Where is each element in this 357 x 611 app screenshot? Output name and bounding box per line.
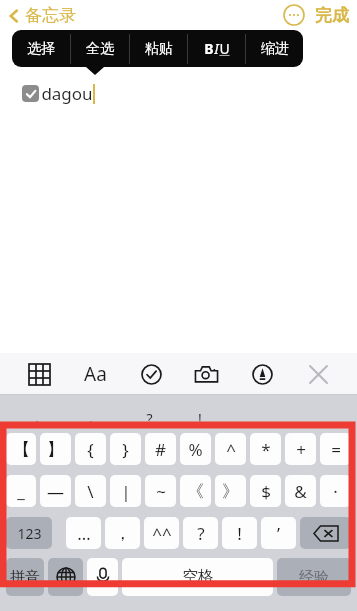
staticText: * [261,438,271,461]
staticText: 【 [13,439,30,460]
staticText: 。 [88,410,102,428]
staticText: $ [261,480,271,503]
button[interactable]: B [188,30,245,67]
staticText: 全选 [86,40,114,58]
button[interactable]: 选择 [12,30,70,67]
staticText: 空格 [182,567,214,587]
button[interactable]: · [320,475,351,507]
button[interactable]: Text format [78,357,112,391]
staticText: 缩进 [261,40,289,58]
button[interactable]: { [75,433,106,465]
staticText: …… [304,409,327,428]
button[interactable]: Voice input [87,558,118,596]
staticText: 、 [246,410,260,428]
staticText: ! [198,409,202,428]
button[interactable]: … [66,517,101,549]
staticText: 完成 [315,5,349,26]
staticText: = [331,438,341,461]
button[interactable]: 备忘录 [6,5,76,26]
staticText: — [47,480,64,503]
button[interactable]: # [145,433,176,465]
button[interactable]: % [180,433,211,465]
button[interactable]: ~ [145,475,176,507]
button[interactable]: 完成 [315,5,349,26]
button[interactable]: & [285,475,316,507]
staticText: _ [17,480,25,503]
button[interactable]: ? [146,409,153,428]
staticText: 备忘录 [25,5,76,26]
button[interactable]: 经验 [277,558,351,596]
button[interactable]: — [40,475,71,507]
button[interactable]: | [110,475,141,507]
staticText: · [333,480,338,503]
button[interactable]: ! [222,517,257,549]
button[interactable]: ’ [261,517,296,549]
staticText: ， [30,410,44,428]
button[interactable]: Camera [189,357,223,391]
staticText: ? [197,522,205,545]
button[interactable]: Checklist [134,357,168,391]
staticText: U [219,39,230,58]
button[interactable]: ^^ [144,517,179,549]
staticText: Aa [84,361,107,387]
staticText: B [204,39,214,58]
button[interactable]: 全选 [71,30,129,67]
button[interactable]: $ [250,475,281,507]
staticText: % [188,438,203,461]
button[interactable]: 】 [40,433,71,465]
button[interactable]: ， [105,517,140,549]
staticText: 》 [222,481,239,502]
staticText: 《 [187,481,204,502]
staticText: \ [87,480,94,503]
staticText: + [296,438,306,461]
button[interactable]: ? [183,517,218,549]
button[interactable]: …… [304,409,327,428]
staticText: ~ [156,480,166,503]
staticText: ^^ [152,522,172,545]
staticText: } [122,438,129,461]
button[interactable]: 123 [6,517,52,549]
button[interactable]: 》 [215,475,246,507]
button[interactable]: Switch language [48,558,83,596]
staticText: 选择 [27,40,55,58]
staticText: 经验 [299,568,329,587]
staticText: I [214,39,219,58]
staticText: ^ [226,438,236,461]
staticText: & [294,480,307,503]
button[interactable]: \ [75,475,106,507]
button[interactable]: More options [283,4,305,26]
button[interactable]: * [250,433,281,465]
button[interactable]: 拼音 [6,558,44,596]
button[interactable]: 粘贴 [130,30,187,67]
button[interactable]: 。 [88,410,102,428]
button[interactable]: Checked [22,85,39,102]
staticText: { [87,438,94,461]
button[interactable]: _ [6,475,36,507]
button[interactable]: Close [301,357,335,391]
button[interactable]: } [110,433,141,465]
button[interactable]: 、 [246,410,260,428]
staticText: ， [114,523,131,544]
staticText: … [77,522,91,545]
staticText: 123 [17,524,42,543]
button[interactable]: Table [22,357,56,391]
button[interactable]: Markup [245,357,279,391]
button[interactable]: ! [198,409,202,428]
staticText: # [155,438,166,461]
button[interactable]: = [320,433,351,465]
button[interactable]: 空格 [122,558,273,596]
button[interactable]: + [285,433,316,465]
button[interactable]: 《 [180,475,211,507]
staticText: 拼音 [10,568,40,587]
staticText: ? [146,409,153,428]
staticText: dagou [41,82,93,105]
staticText: ’ [277,522,280,545]
button[interactable]: 【 [6,433,36,465]
button[interactable]: ， [30,410,44,428]
staticText: ! [237,522,242,545]
button[interactable]: 缩进 [246,30,303,67]
button[interactable]: ^ [215,433,246,465]
button[interactable]: Backspace [300,517,351,549]
staticText: | [121,480,131,503]
staticText: 】 [47,439,64,460]
